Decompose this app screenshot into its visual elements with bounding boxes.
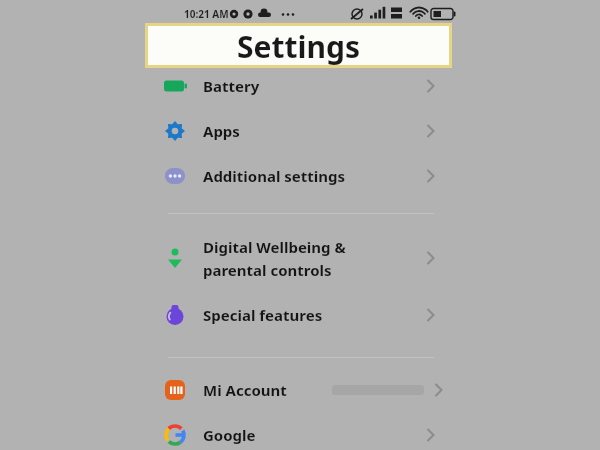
staticText: parental controls	[203, 260, 332, 280]
button[interactable]: Digital Wellbeing &	[0, 230, 600, 286]
staticText: Mi Account	[203, 380, 287, 400]
staticText: Settings	[237, 26, 360, 65]
staticText: Google	[203, 425, 256, 445]
staticText: Additional settings	[203, 166, 346, 186]
button[interactable]: Apps	[0, 109, 600, 153]
staticText: Special features	[203, 305, 323, 325]
button[interactable]: Mi Account	[0, 368, 600, 412]
staticText: Digital Wellbeing &	[203, 237, 346, 257]
button[interactable]: Google	[0, 413, 600, 450]
button[interactable]: Additional settings	[0, 154, 600, 198]
staticText: Battery	[203, 76, 260, 96]
button[interactable]: Battery	[0, 64, 600, 108]
staticText: 10:21 AM	[184, 7, 229, 21]
staticText: Apps	[203, 121, 240, 141]
button[interactable]: Special features	[0, 293, 600, 337]
